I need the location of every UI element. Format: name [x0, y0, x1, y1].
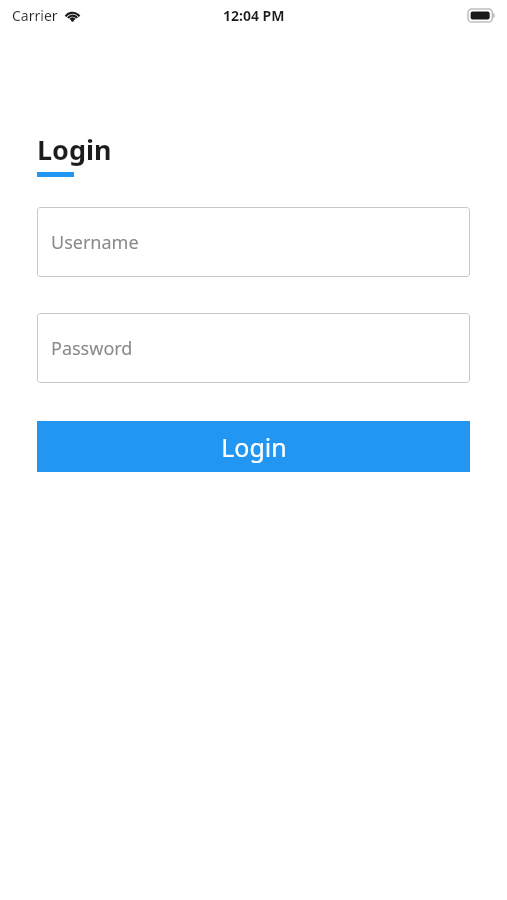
- staticText: Password: [51, 336, 133, 361]
- button[interactable]: Login: [37, 421, 470, 472]
- staticText: Login: [221, 430, 287, 464]
- staticText: Username: [51, 230, 139, 255]
- staticText: Carrier: [12, 6, 58, 25]
- other: Battery full: [468, 9, 495, 22]
- button[interactable]: Username: [37, 207, 470, 277]
- button[interactable]: Password: [37, 313, 470, 383]
- staticText: 12:04 PM: [223, 6, 285, 25]
- staticText: Login: [37, 131, 112, 168]
